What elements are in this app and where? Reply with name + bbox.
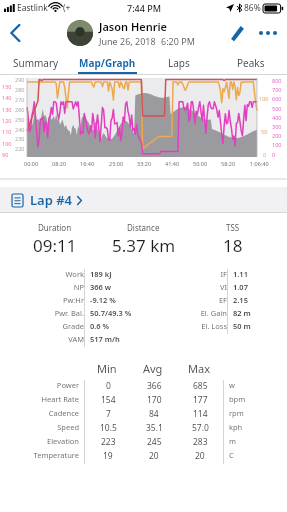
staticText: Avg bbox=[143, 361, 163, 376]
staticText: 400 bbox=[272, 114, 282, 121]
staticText: -9.12 % bbox=[90, 295, 116, 305]
staticText: 270 bbox=[15, 96, 25, 103]
staticText: Pwr. Bal. bbox=[54, 308, 84, 318]
staticText: Laps bbox=[168, 56, 190, 70]
staticText: 50 m bbox=[233, 321, 251, 331]
staticText: 00:00 bbox=[24, 160, 39, 167]
staticText: 100 bbox=[272, 141, 282, 148]
staticText: 290 bbox=[15, 76, 25, 83]
staticText: 517 m/h bbox=[90, 334, 120, 344]
staticText: 1.11 bbox=[233, 269, 248, 279]
button[interactable]: Summary bbox=[0, 51, 71, 75]
staticText: Power bbox=[56, 380, 79, 390]
staticText: 280 bbox=[15, 86, 25, 93]
staticText: 0.6 % bbox=[90, 321, 110, 331]
staticText: 283 bbox=[193, 436, 208, 448]
staticText: Temperature bbox=[33, 450, 79, 460]
staticText: 220 bbox=[15, 145, 25, 152]
staticText: Heart Rate bbox=[41, 394, 79, 404]
staticText: 245 bbox=[147, 436, 162, 448]
staticText: 10.5 bbox=[100, 422, 117, 434]
staticText: Speed bbox=[57, 422, 79, 432]
staticText: rpm bbox=[229, 408, 244, 418]
staticText: Min bbox=[97, 361, 117, 376]
button[interactable]: Peaks bbox=[215, 51, 287, 75]
staticText: 366 bbox=[147, 380, 162, 392]
staticText: (+ bbox=[63, 2, 71, 14]
staticText: 1.07 bbox=[233, 282, 248, 292]
staticText: 41:40 bbox=[165, 160, 180, 167]
staticText: Jason Henrie bbox=[99, 19, 168, 34]
staticText: Peaks bbox=[237, 56, 265, 70]
staticText: Cadence bbox=[48, 408, 79, 418]
staticText: 84 bbox=[149, 408, 159, 420]
staticText: 800 bbox=[272, 77, 282, 84]
staticText: 18 bbox=[223, 234, 243, 257]
staticText: Max bbox=[188, 361, 210, 376]
staticText: EF bbox=[218, 295, 227, 305]
button[interactable]: More options bbox=[255, 20, 281, 46]
staticText: 50 bbox=[261, 128, 268, 135]
staticText: 6:20 PM bbox=[161, 35, 195, 47]
staticText: El. Gain bbox=[200, 308, 227, 318]
staticText: 0 bbox=[272, 151, 276, 158]
staticText: 33:20 bbox=[137, 160, 152, 167]
staticText: 154 bbox=[101, 394, 116, 406]
staticText: 366 w bbox=[90, 282, 112, 292]
staticText: 189 kJ bbox=[90, 269, 112, 279]
staticText: Summary bbox=[13, 56, 59, 70]
staticText: 250 bbox=[15, 116, 25, 123]
staticText: Map/Graph bbox=[79, 56, 136, 70]
staticText: 5.37 km bbox=[112, 234, 176, 257]
staticText: 57.0 bbox=[192, 422, 209, 434]
staticText: 170 bbox=[147, 394, 162, 406]
staticText: 114 bbox=[193, 408, 208, 420]
staticText: 09:11 bbox=[33, 234, 77, 257]
staticText: 90 bbox=[2, 151, 9, 158]
staticText: NP bbox=[73, 282, 84, 292]
staticText: 230 bbox=[15, 135, 25, 142]
staticText: 110 bbox=[2, 128, 12, 135]
staticText: Work bbox=[65, 269, 84, 279]
staticText: 7:44 PM bbox=[127, 2, 161, 14]
button[interactable]: Map/Graph bbox=[71, 51, 143, 75]
button[interactable]: Laps bbox=[143, 51, 215, 75]
staticText: IF bbox=[220, 269, 227, 279]
staticText: 86% bbox=[244, 2, 261, 14]
staticText: Distance bbox=[127, 222, 160, 233]
staticText: m bbox=[229, 436, 237, 446]
staticText: 177 bbox=[193, 394, 208, 406]
staticText: kph bbox=[229, 422, 243, 432]
staticText: 50.7/49.3 % bbox=[90, 308, 132, 318]
staticText: bpm bbox=[229, 394, 246, 404]
staticText: Lap #4 bbox=[30, 191, 73, 209]
staticText: 150 bbox=[2, 83, 12, 90]
staticText: 2.15 bbox=[233, 295, 248, 305]
staticText: 700 bbox=[272, 86, 282, 93]
staticText: 50:00 bbox=[193, 160, 208, 167]
staticText: Eastlink bbox=[17, 2, 48, 14]
staticText: w bbox=[229, 380, 235, 390]
staticText: 223 bbox=[101, 436, 116, 448]
staticText: 120 bbox=[2, 117, 12, 124]
staticText: 140 bbox=[2, 94, 12, 101]
button[interactable]: Back bbox=[0, 18, 30, 48]
staticText: 0 bbox=[263, 151, 267, 158]
staticText: 16:40 bbox=[80, 160, 95, 167]
staticText: 260 bbox=[15, 106, 25, 113]
staticText: Elevation bbox=[46, 436, 79, 446]
staticText: 19 bbox=[103, 450, 113, 462]
staticText: 200 bbox=[272, 132, 282, 139]
staticText: 240 bbox=[15, 126, 25, 133]
staticText: Grade bbox=[62, 321, 84, 331]
button[interactable]: Edit bbox=[223, 20, 249, 46]
staticText: 7 bbox=[106, 408, 111, 420]
staticText: 500 bbox=[272, 105, 282, 112]
staticText: C bbox=[229, 450, 234, 460]
staticText: 08:20 bbox=[52, 160, 67, 167]
staticText: 100 bbox=[2, 140, 12, 147]
staticText: 82 m bbox=[233, 308, 251, 318]
staticText: 35.1 bbox=[146, 422, 163, 434]
staticText: 58:20 bbox=[221, 160, 236, 167]
button[interactable]: Lap #4 bbox=[0, 187, 287, 213]
